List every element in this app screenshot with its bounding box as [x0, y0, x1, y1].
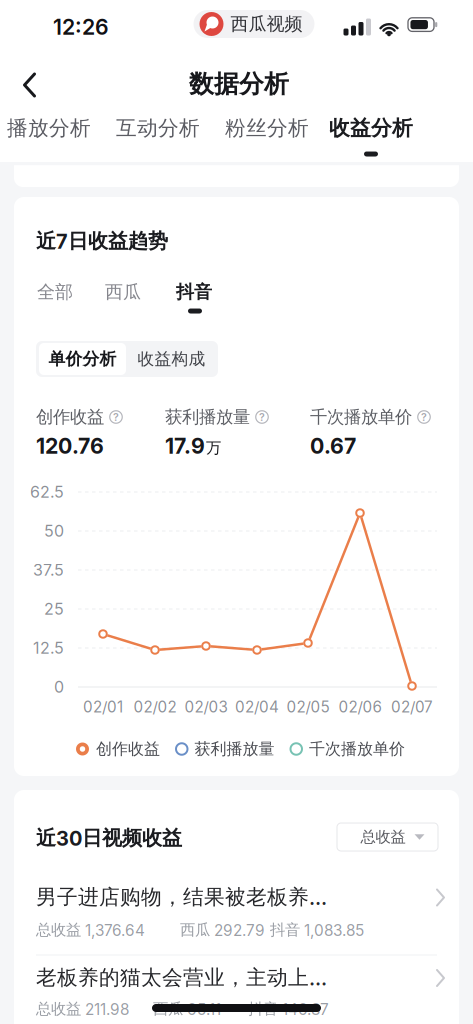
button[interactable]: 获利播放量 — [176, 739, 274, 759]
staticText: 0.67 — [310, 433, 356, 459]
staticText: 62.5 — [30, 482, 64, 502]
staticText: 02/03 — [184, 698, 227, 716]
staticText: 12.5 — [33, 638, 64, 658]
staticText: 收益分析 — [329, 115, 413, 141]
staticText: 120.76 — [36, 433, 104, 459]
staticText: 抖音 146.87 — [248, 999, 329, 1019]
staticText: 总收益 — [360, 827, 405, 847]
staticText: 02/02 — [133, 698, 176, 716]
button[interactable]: 总收益筛选 — [337, 823, 438, 851]
button[interactable]: 粉丝分析 — [221, 109, 313, 147]
staticText: 播放分析 — [7, 115, 91, 141]
staticText: 全部 — [37, 281, 73, 303]
staticText: 互动分析 — [116, 115, 200, 141]
button[interactable]: 男子进店购物，结果被老板养... — [24, 880, 449, 936]
staticText: 男子进店购物，结果被老板养... — [36, 884, 327, 910]
staticText: 25 — [44, 599, 64, 619]
staticText: 单价分析 — [48, 348, 116, 369]
staticText: 抖音 1,083.85 — [270, 920, 364, 940]
staticText: 近30日视频收益 — [36, 825, 182, 851]
staticText: 千次播放单价 — [310, 406, 412, 428]
button[interactable]: 西瓜 — [102, 276, 144, 308]
staticText: ? — [259, 410, 265, 423]
staticText: 创作收益 — [96, 739, 160, 759]
staticText: 02/06 — [338, 698, 381, 716]
staticText: 37.5 — [33, 560, 64, 580]
staticText: 获利播放量 — [194, 739, 274, 759]
button[interactable]: 创作收益 — [76, 739, 160, 759]
button[interactable]: 千次播放单价 — [290, 739, 405, 759]
button[interactable]: 返回 — [22, 72, 48, 97]
staticText: 数据分析 — [189, 68, 289, 100]
button[interactable]: 说明 — [108, 409, 124, 425]
button[interactable]: 说明 — [254, 409, 270, 425]
staticText: ? — [113, 410, 119, 423]
button[interactable]: 播放分析 — [3, 109, 95, 147]
staticText: ? — [421, 410, 427, 423]
button[interactable]: 老板养的猫太会营业，主动上... — [24, 960, 449, 1016]
staticText: 50 — [44, 521, 64, 541]
staticText: 西瓜 — [105, 281, 141, 303]
staticText: 总收益 1,376.64 — [36, 920, 145, 940]
staticText: 西瓜视频 — [230, 13, 302, 35]
staticText: 收益构成 — [137, 348, 205, 369]
staticText: 02/05 — [286, 698, 329, 716]
staticText: 老板养的猫太会营业，主动上... — [36, 964, 327, 990]
button[interactable]: 收益分析 — [325, 109, 417, 147]
button[interactable]: 收益构成 — [127, 341, 216, 377]
staticText: 12:26 — [53, 14, 109, 40]
button[interactable]: 西瓜视频 — [193, 10, 314, 38]
staticText: 西瓜 292.79 — [180, 920, 265, 940]
staticText: 02/07 — [391, 698, 433, 716]
staticText: 创作收益 — [36, 406, 104, 428]
button[interactable]: 互动分析 — [112, 109, 204, 147]
staticText: 02/01 — [83, 698, 123, 716]
staticText: 近7日收益趋势 — [36, 228, 168, 254]
staticText: 千次播放单价 — [309, 739, 405, 759]
button[interactable]: 全部 — [34, 276, 76, 308]
staticText: 总收益 211.98 — [36, 999, 129, 1019]
staticText: 西瓜 65.11 — [153, 999, 221, 1019]
staticText: 02/04 — [235, 698, 279, 716]
staticText: 粉丝分析 — [225, 115, 309, 141]
staticText: 获利播放量 — [165, 406, 250, 428]
button[interactable]: 说明 — [416, 409, 432, 425]
button[interactable]: 抖音 — [173, 276, 215, 308]
button[interactable]: 单价分析 — [38, 341, 127, 377]
staticText: 抖音 — [176, 281, 212, 303]
staticText: 万 — [206, 438, 221, 458]
staticText: 17.9 — [165, 433, 205, 459]
staticText: 0 — [54, 677, 64, 697]
